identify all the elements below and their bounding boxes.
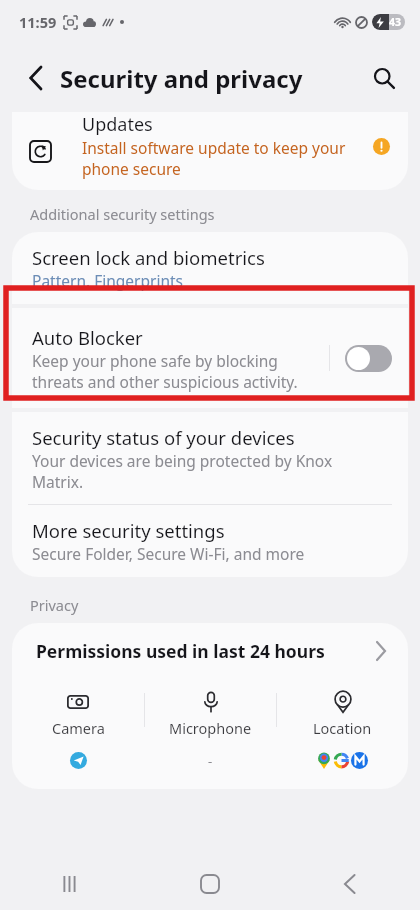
staticText: Keep your phone safe by blocking (32, 350, 278, 371)
staticText: 11:59 (19, 12, 57, 32)
button[interactable]: Security status of your devices (12, 412, 408, 504)
staticText: Install software update to keep your (82, 137, 346, 158)
staticText: Screen lock and biometrics (32, 245, 265, 270)
staticText: - (208, 752, 213, 770)
button[interactable]: More security settings (12, 505, 408, 577)
staticText: 43 (389, 15, 402, 29)
button[interactable]: Back (280, 858, 420, 910)
button[interactable]: Permissions used in last 24 hours (12, 623, 408, 679)
button[interactable]: Microphone (145, 679, 276, 770)
staticText: Camera (52, 718, 105, 738)
button[interactable]: Updates (12, 112, 408, 190)
staticText: Permissions used in last 24 hours (36, 639, 325, 663)
button[interactable]: Auto Blocker toggle (345, 345, 392, 372)
button[interactable]: Search (362, 56, 406, 100)
staticText: Updates (82, 112, 153, 137)
staticText: Privacy (30, 595, 79, 615)
staticText: More security settings (32, 518, 225, 543)
staticText: Location (313, 718, 372, 738)
staticText: Your devices are being protected by Knox (32, 450, 333, 471)
staticText: Microphone (169, 718, 252, 738)
button[interactable]: Recents (0, 858, 140, 910)
button[interactable]: Home (140, 858, 280, 910)
staticText: threats and other suspicious activity. (32, 371, 298, 392)
button[interactable]: Camera (12, 679, 144, 769)
staticText: Security status of your devices (32, 425, 295, 450)
staticText: Auto Blocker (32, 325, 143, 350)
button[interactable]: Auto Blocker (12, 308, 408, 408)
staticText: Pattern, Fingerprints (32, 270, 184, 291)
staticText: Additional security settings (30, 204, 215, 224)
staticText: Security and privacy (60, 62, 303, 95)
staticText: phone secure (82, 158, 181, 179)
button[interactable]: Screen lock and biometrics (12, 232, 408, 304)
staticText: Secure Folder, Secure Wi-Fi, and more (32, 543, 305, 564)
staticText: Matrix. (32, 471, 84, 492)
button[interactable]: Location (277, 679, 408, 769)
button[interactable]: Back (16, 58, 56, 98)
